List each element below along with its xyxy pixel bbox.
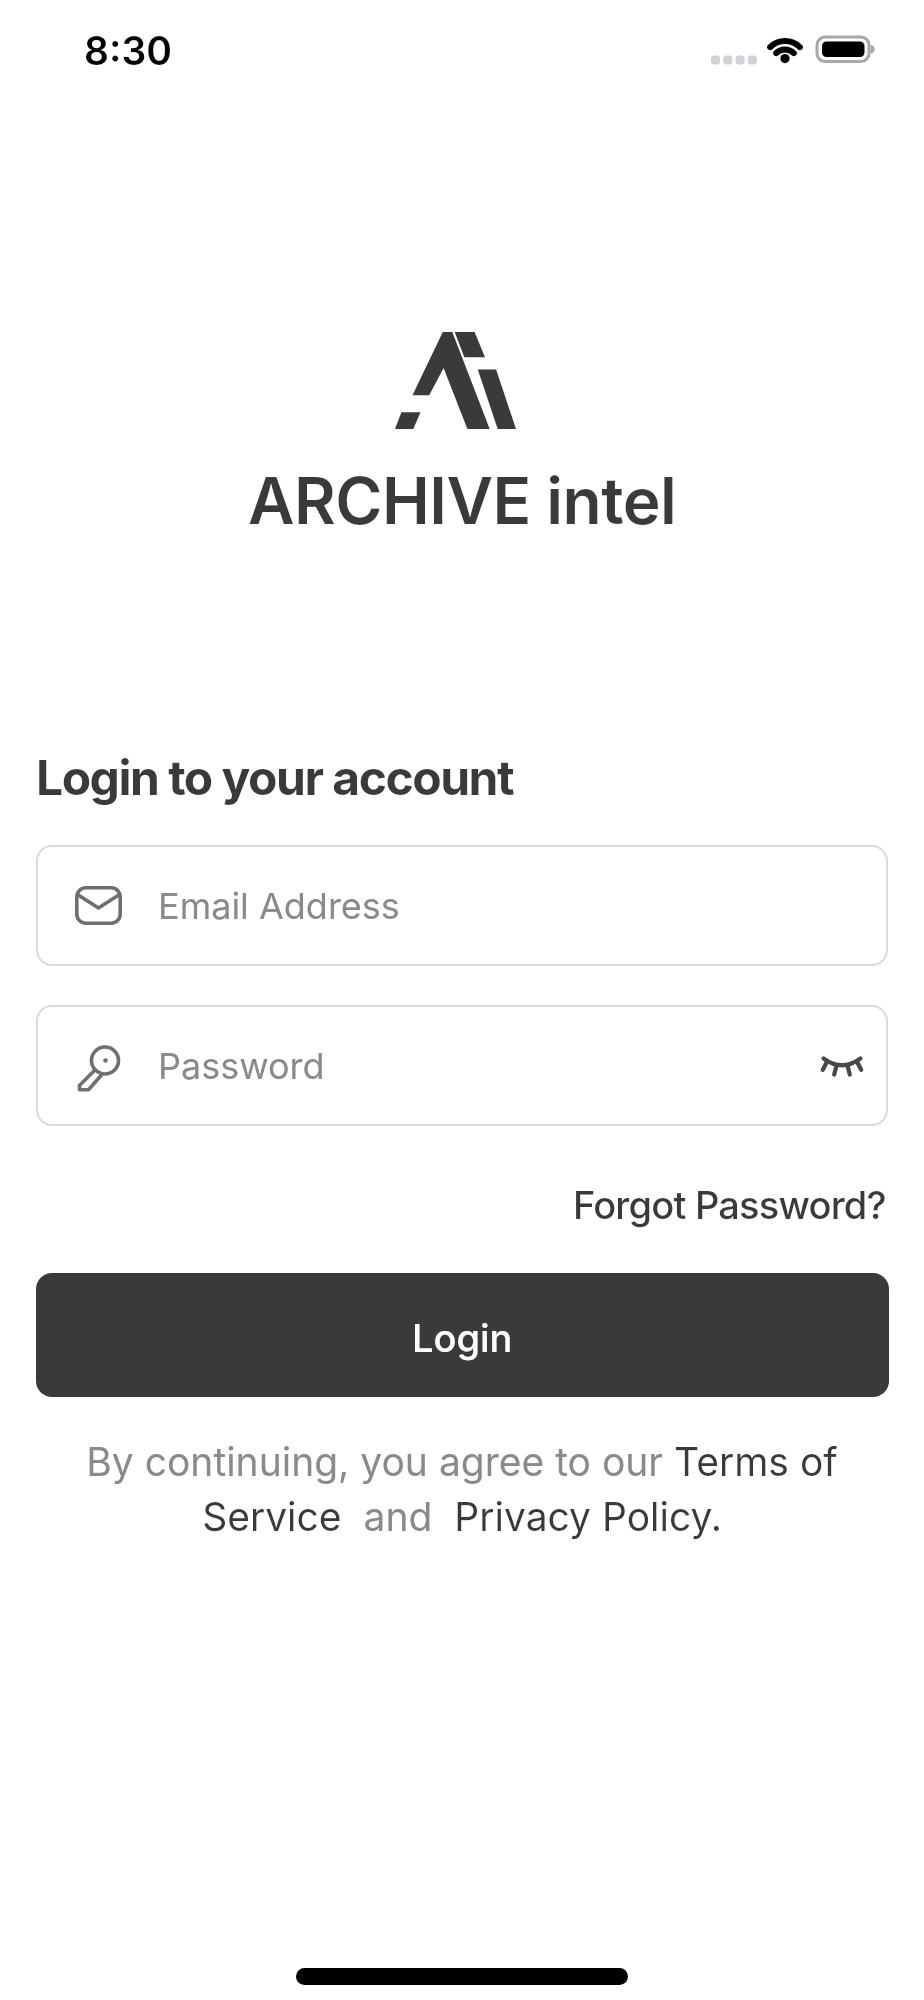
button[interactable]: Forgot Password? (36, 1178, 886, 1232)
button[interactable]: Password (36, 1005, 888, 1126)
staticText: Forgot Password? (573, 1182, 886, 1228)
staticText: Password (158, 1044, 325, 1088)
staticText: ARCHIVE intel (248, 462, 677, 538)
staticText: Login (412, 1315, 513, 1361)
staticText: Login to your account (36, 748, 513, 806)
button[interactable]: Login (36, 1273, 889, 1397)
staticText: 8:30 (84, 27, 172, 74)
button[interactable]: Email Address (36, 845, 888, 966)
staticText: Email Address (158, 884, 400, 928)
staticText: By continuing, you agree to our Terms of… (62, 1438, 862, 1540)
button[interactable]: By continuing, you agree to our Terms of… (0, 1438, 924, 1540)
